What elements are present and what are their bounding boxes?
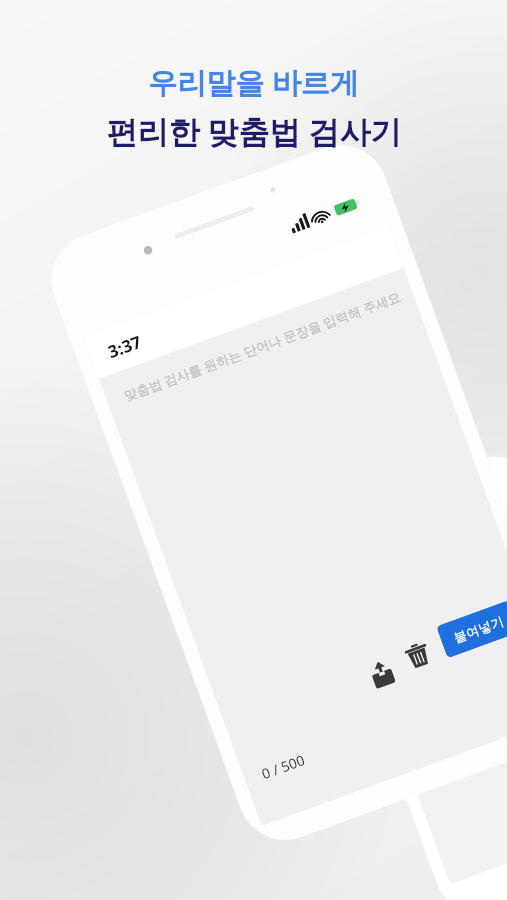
staticText: 3:37 <box>105 330 144 363</box>
button[interactable]: 공유 <box>363 655 402 694</box>
staticText: 편리한 맞춤법 검사기 <box>106 110 402 152</box>
staticText: 맞춤법 검사를 원하는 단어나 문장을 입력해 주세요 <box>121 287 404 405</box>
staticText: 붙여넣기 <box>451 613 506 645</box>
button[interactable]: 붙여넣기 <box>436 600 507 658</box>
button[interactable]: 삭제 <box>399 636 437 675</box>
staticText: 0 / 500 <box>259 750 308 783</box>
staticText: 우리말을 바르게 <box>148 62 359 102</box>
